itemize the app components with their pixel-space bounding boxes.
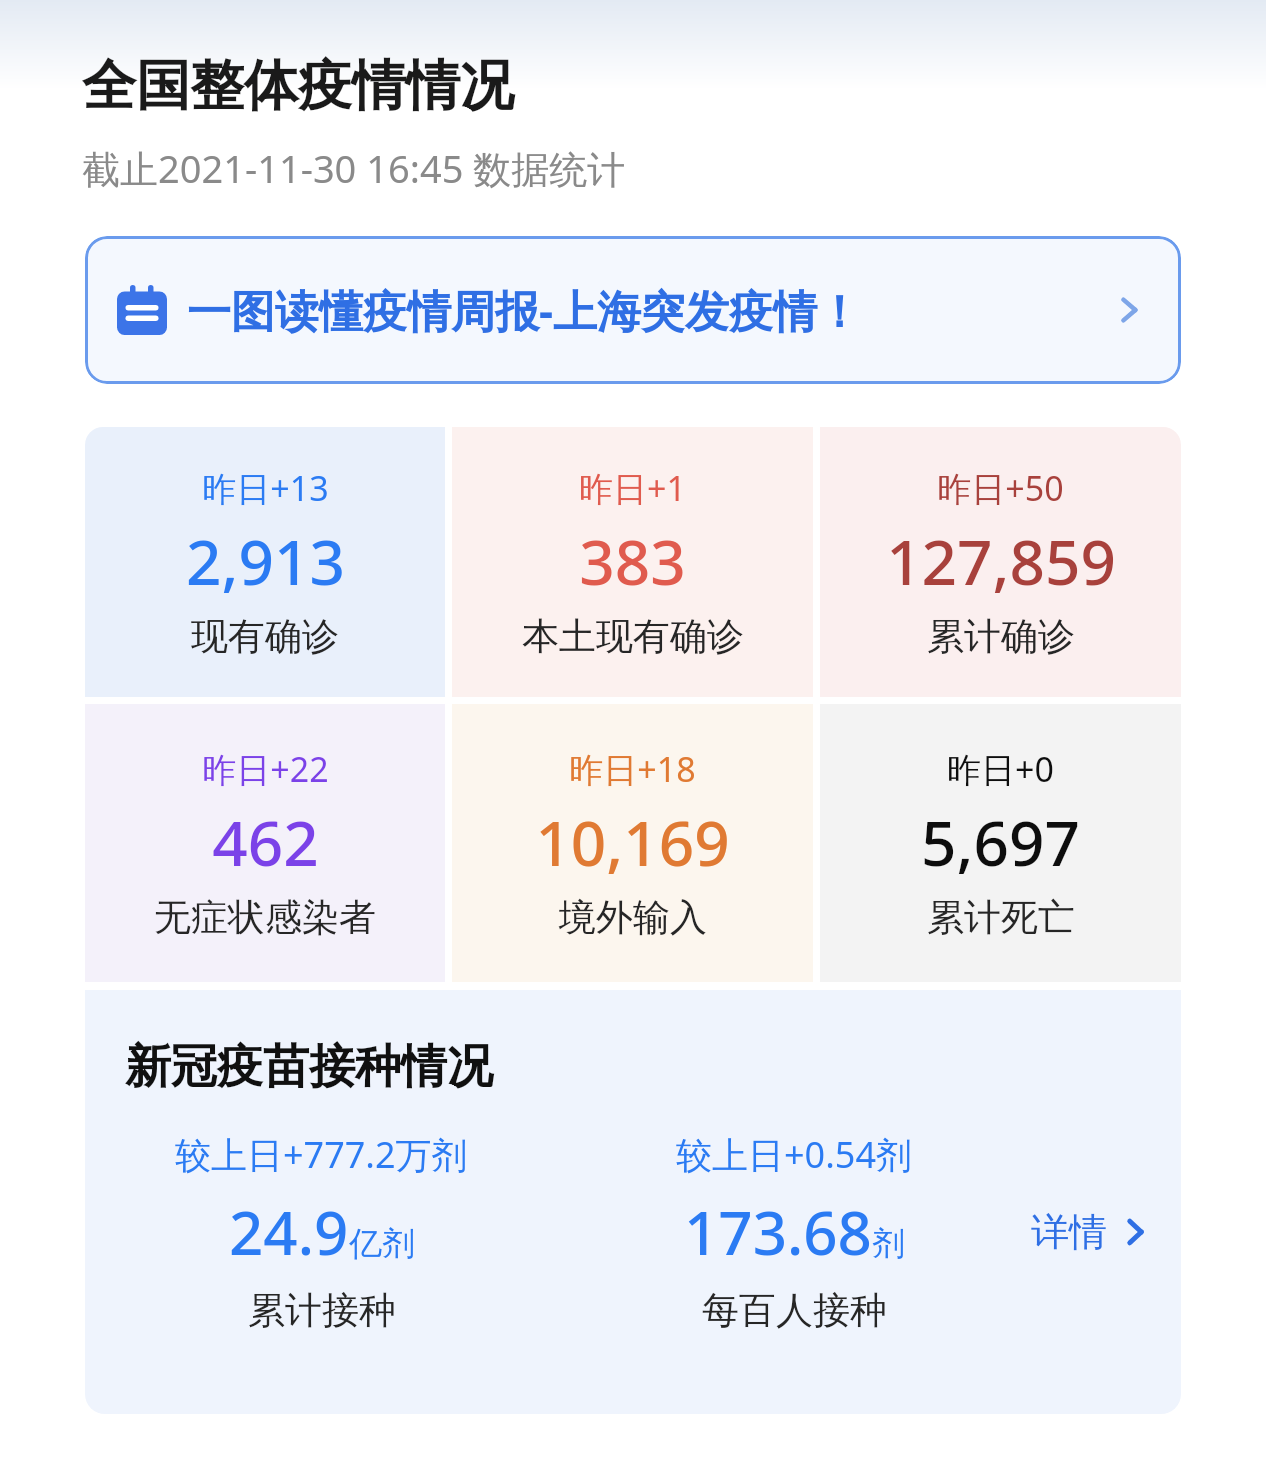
button[interactable]: 昨日+13	[85, 427, 445, 697]
other: 查看详情	[1109, 290, 1149, 330]
staticText: 现有确诊	[191, 613, 339, 660]
staticText: 昨日+18	[569, 746, 696, 792]
staticText: 昨日+13	[202, 465, 329, 511]
staticText: 383	[579, 519, 686, 603]
staticText: 24.9	[229, 1191, 349, 1273]
staticText: 亿剂	[349, 1223, 415, 1265]
staticText: 一图读懂疫情周报-上海突发疫情！	[187, 280, 1109, 340]
staticText: 全国整体疫情情况	[82, 52, 514, 120]
staticText: 10,169	[535, 800, 730, 884]
staticText: 昨日+0	[947, 746, 1054, 792]
staticText: 累计确诊	[927, 613, 1075, 660]
staticText: 173.68	[684, 1191, 872, 1273]
button[interactable]: 一图读懂疫情周报-上海突发疫情！	[85, 236, 1181, 384]
staticText: 无症状感染者	[154, 894, 376, 941]
staticText: 昨日+22	[202, 746, 329, 792]
staticText: 本土现有确诊	[522, 613, 744, 660]
staticText: 剂	[872, 1223, 905, 1265]
staticText: 每百人接种	[702, 1287, 887, 1334]
staticText: 127,859	[886, 519, 1116, 603]
button[interactable]: 昨日+1	[452, 427, 813, 697]
button[interactable]: 详情	[1031, 1208, 1181, 1256]
staticText: 累计接种	[248, 1287, 396, 1334]
staticText: 昨日+1	[579, 465, 686, 511]
staticText: 较上日+0.54剂	[676, 1130, 913, 1179]
staticText: 较上日+777.2万剂	[175, 1130, 468, 1179]
staticText: 累计死亡	[927, 894, 1075, 941]
staticText: 新冠疫苗接种情况	[125, 1038, 493, 1096]
staticText: 截止2021-11-30 16:45 数据统计	[82, 142, 626, 194]
staticText: 2,913	[186, 519, 345, 603]
button[interactable]: 昨日+18	[452, 704, 813, 982]
staticText: 详情	[1031, 1208, 1107, 1256]
button[interactable]: 昨日+50	[820, 427, 1181, 697]
staticText: 462	[212, 800, 319, 884]
staticText: 昨日+50	[937, 465, 1064, 511]
staticText: 境外输入	[559, 894, 707, 941]
staticText: 5,697	[921, 800, 1080, 884]
button[interactable]: 昨日+22	[85, 704, 445, 982]
button[interactable]: 昨日+0	[820, 704, 1181, 982]
